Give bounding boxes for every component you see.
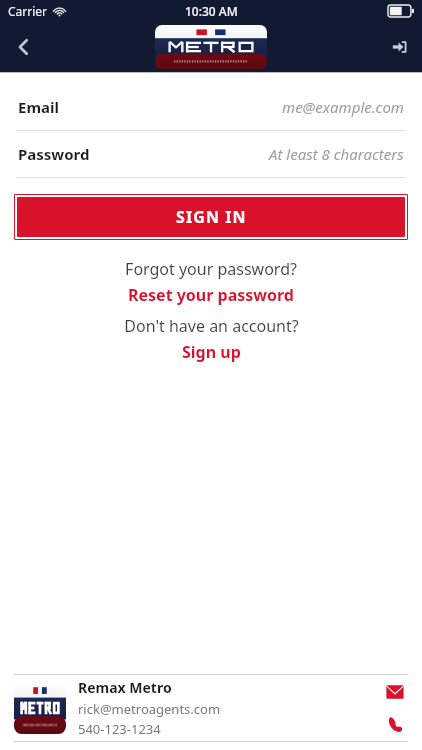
button[interactable]: Call (382, 711, 408, 737)
button[interactable]: Remax Metro (0, 675, 422, 741)
button[interactable]: Password (0, 131, 422, 177)
button[interactable]: Back (0, 24, 46, 70)
staticText: me@example.com (282, 97, 404, 117)
button[interactable]: SIGN IN (17, 197, 405, 237)
button[interactable]: Sign up (176, 340, 247, 364)
staticText: Reset your password (128, 284, 294, 306)
staticText: rick@metroagents.com (78, 700, 221, 718)
staticText: Forgot your password? (125, 258, 297, 280)
staticText: Email (18, 97, 59, 117)
staticText: 10:30 AM (185, 3, 238, 19)
button[interactable]: Email (382, 679, 408, 705)
staticText: Carrier (8, 3, 48, 19)
staticText: Sign up (182, 341, 241, 363)
staticText: Don't have an account? (124, 315, 299, 337)
staticText: Remax Metro (78, 678, 172, 697)
staticText: 540-123-1234 (78, 720, 161, 738)
staticText: SIGN IN (176, 206, 247, 228)
button[interactable]: Email (0, 84, 422, 130)
staticText: At least 8 characters (269, 144, 404, 164)
button[interactable]: Reset your password (122, 283, 300, 307)
button[interactable]: Sign in (376, 24, 422, 70)
staticText: Password (18, 144, 90, 164)
